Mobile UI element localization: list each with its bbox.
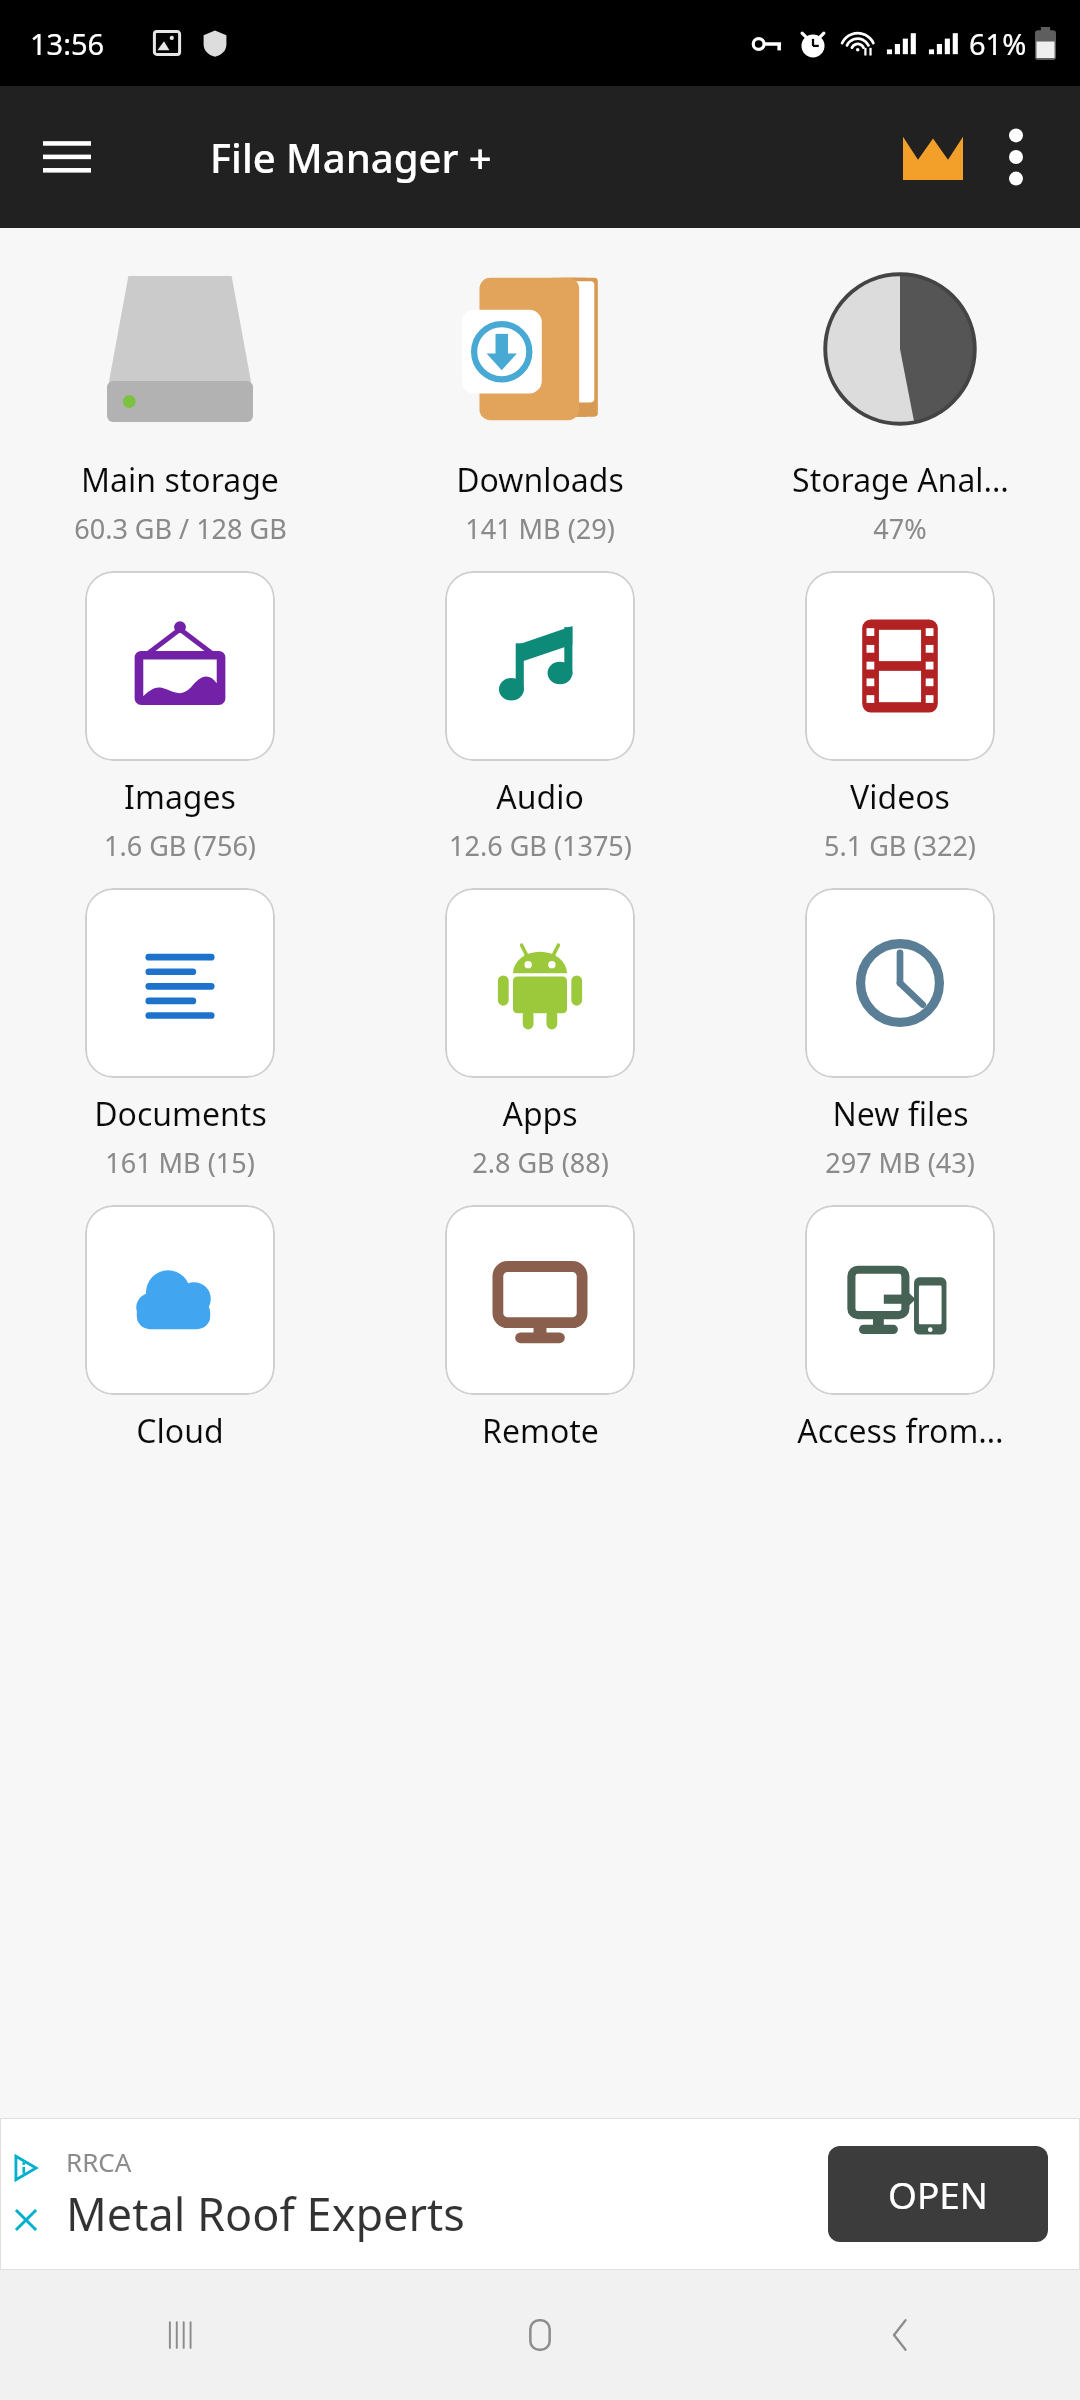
staticText: 297 MB (43) (825, 1144, 975, 1181)
button[interactable]: Downloads (360, 242, 720, 559)
button[interactable]: Remote (360, 1193, 720, 1465)
staticText: Metal Roof Experts (66, 2183, 465, 2244)
button[interactable]: Storage Anal… (720, 242, 1080, 559)
button[interactable]: Cloud (0, 1193, 360, 1465)
staticText: Storage Anal… (792, 458, 1009, 502)
staticText: 5.1 GB (322) (824, 827, 976, 864)
staticText: 2.8 GB (88) (472, 1144, 609, 1181)
staticText: RRCA (66, 2144, 132, 2179)
staticText: 60.3 GB / 128 GB (74, 510, 287, 547)
staticText: Images (124, 775, 236, 819)
staticText: 12.6 GB (1375) (449, 827, 632, 864)
button[interactable]: Access from… (720, 1193, 1080, 1465)
button[interactable]: More options (976, 117, 1056, 197)
button[interactable]: Upgrade to premium (890, 114, 976, 200)
button[interactable]: Recent apps (0, 2270, 360, 2400)
staticText: Cloud (136, 1409, 224, 1453)
staticText: Apps (502, 1092, 578, 1136)
staticText: OPEN (888, 2169, 988, 2219)
button[interactable]: Back (720, 2270, 1080, 2400)
button[interactable]: OPEN (828, 2146, 1048, 2242)
staticText: 161 MB (15) (105, 1144, 255, 1181)
staticText: Audio (496, 775, 584, 819)
staticText: Access from… (797, 1409, 1004, 1453)
other: Ad choices (12, 2154, 40, 2182)
staticText: Downloads (456, 458, 624, 502)
staticText: File Manager + (210, 130, 492, 184)
button[interactable]: Ad choices (0, 2118, 1080, 2270)
staticText: Main storage (81, 458, 279, 502)
staticText: Documents (94, 1092, 267, 1136)
button[interactable]: Audio (360, 559, 720, 876)
staticText: 61% (969, 24, 1027, 63)
button[interactable]: Main storage (0, 242, 360, 559)
staticText: 47% (873, 510, 927, 547)
button[interactable]: Home (360, 2270, 720, 2400)
button[interactable]: New files (720, 876, 1080, 1193)
button[interactable]: Documents (0, 876, 360, 1193)
staticText: 141 MB (29) (465, 510, 615, 547)
staticText: 1.6 GB (756) (104, 827, 256, 864)
staticText: 13:56 (30, 24, 105, 63)
staticText: Remote (482, 1409, 599, 1453)
staticText: New files (832, 1092, 969, 1136)
button[interactable]: Open navigation drawer (32, 122, 102, 192)
staticText: Videos (850, 775, 950, 819)
other: Close ad (12, 2206, 40, 2234)
button[interactable]: Apps (360, 876, 720, 1193)
button[interactable]: Images (0, 559, 360, 876)
button[interactable]: Videos (720, 559, 1080, 876)
